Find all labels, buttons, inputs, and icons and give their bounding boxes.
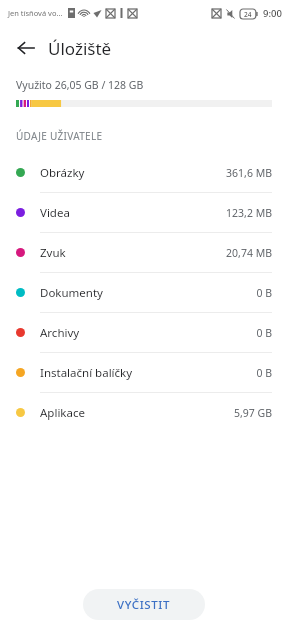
staticText: Videa — [40, 205, 226, 221]
button[interactable]: Videa — [0, 193, 288, 232]
staticText: Instalační balíčky — [40, 365, 256, 381]
staticText: 0 B — [256, 366, 272, 380]
staticText: Dokumenty — [40, 285, 256, 301]
staticText: 0 B — [256, 326, 272, 340]
button[interactable]: Dokumenty — [0, 273, 288, 312]
staticText: Zvuk — [40, 245, 226, 261]
button[interactable]: VYČISTIT — [83, 589, 205, 620]
staticText: Obrázky — [40, 165, 226, 181]
staticText: 5,97 GB — [233, 406, 272, 420]
staticText: VYČISTIT — [117, 597, 171, 613]
staticText: 20,74 MB — [226, 246, 272, 260]
button[interactable]: Aplikace — [0, 393, 288, 432]
button[interactable]: Back — [10, 32, 42, 64]
staticText: 0 B — [256, 286, 272, 300]
staticText: ÚDAJE UŽIVATELE — [16, 129, 103, 143]
staticText: Archivy — [40, 325, 256, 341]
button[interactable]: Instalační balíčky — [0, 353, 288, 392]
button[interactable]: Archivy — [0, 313, 288, 352]
staticText: 123,2 MB — [226, 206, 272, 220]
button[interactable]: Zvuk — [0, 233, 288, 272]
staticText: Jen tísňová vo… — [8, 8, 63, 18]
staticText: 24 — [244, 10, 252, 19]
staticText: Využito 26,05 GB / 128 GB — [16, 78, 144, 92]
staticText: 361,6 MB — [226, 166, 272, 180]
button[interactable]: Obrázky — [0, 153, 288, 192]
staticText: Aplikace — [40, 405, 233, 421]
staticText: Úložiště — [48, 37, 112, 60]
staticText: 9:00 — [263, 7, 282, 20]
